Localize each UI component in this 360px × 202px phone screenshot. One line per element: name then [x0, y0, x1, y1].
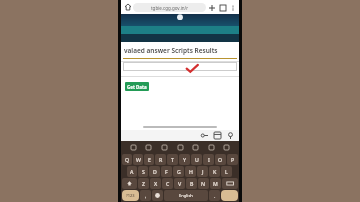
button[interactable]: W: [133, 154, 143, 165]
button[interactable]: N: [198, 178, 209, 189]
staticText: tgbie.cgg.gov.in/r: [151, 5, 189, 11]
button[interactable]: Tabs: [217, 2, 228, 13]
button[interactable]: Q: [122, 154, 132, 165]
button[interactable]: Sticker: [144, 143, 153, 152]
button[interactable]: New tab: [206, 2, 217, 13]
button[interactable]: ?123: [122, 190, 139, 201]
button[interactable]: [123, 62, 237, 71]
button[interactable]: I: [203, 154, 214, 165]
staticText: Y: [183, 156, 187, 163]
staticText: P: [231, 156, 235, 163]
button[interactable]: Addresses: [224, 130, 237, 141]
button[interactable]: Backspace: [222, 178, 238, 189]
button[interactable]: H: [185, 166, 196, 177]
button[interactable]: T: [167, 154, 178, 165]
button[interactable]: A: [127, 166, 137, 177]
button[interactable]: Payment methods: [211, 130, 224, 141]
button[interactable]: L: [221, 166, 232, 177]
staticText: G: [177, 168, 181, 175]
staticText: A: [130, 168, 134, 175]
staticText: F: [165, 168, 168, 175]
button[interactable]: .: [209, 190, 220, 201]
button[interactable]: U: [191, 154, 202, 165]
button[interactable]: Z: [138, 178, 149, 189]
button[interactable]: Y: [179, 154, 190, 165]
button[interactable]: Translate: [176, 143, 185, 152]
button[interactable]: ,: [140, 190, 151, 201]
staticText: Get Data: [127, 84, 147, 90]
staticText: T: [171, 156, 174, 163]
staticText: N: [201, 180, 206, 187]
button[interactable]: C: [162, 178, 173, 189]
button[interactable]: Emoji: [191, 143, 200, 152]
button[interactable]: Voice input: [222, 143, 231, 152]
staticText: C: [166, 180, 170, 187]
staticText: Z: [142, 180, 145, 187]
button[interactable]: tgbie.cgg.gov.in/r: [133, 3, 206, 12]
staticText: D: [153, 168, 157, 175]
button[interactable]: R: [155, 154, 166, 165]
button[interactable]: G: [173, 166, 184, 177]
staticText: L: [225, 168, 228, 175]
staticText: English: [179, 193, 193, 198]
button[interactable]: More options: [228, 3, 237, 12]
staticText: .: [214, 192, 216, 199]
button[interactable]: O: [215, 154, 226, 165]
staticText: V: [178, 180, 182, 187]
button[interactable]: M: [210, 178, 221, 189]
button[interactable]: [221, 190, 238, 201]
staticText: O: [218, 156, 223, 163]
staticText: K: [213, 168, 217, 175]
button[interactable]: S: [138, 166, 148, 177]
button[interactable]: Get Data: [125, 82, 149, 91]
staticText: M: [213, 180, 218, 187]
button[interactable]: D: [149, 166, 160, 177]
button[interactable]: Clipboard: [129, 143, 138, 152]
button[interactable]: Emoji: [152, 190, 163, 201]
button[interactable]: E: [144, 154, 154, 165]
staticText: valaed answer Scripts Results: [124, 46, 218, 55]
button[interactable]: J: [197, 166, 208, 177]
button[interactable]: B: [186, 178, 197, 189]
staticText: W: [136, 156, 141, 163]
button[interactable]: Shift: [122, 178, 137, 189]
staticText: H: [189, 168, 193, 175]
staticText: Q: [125, 156, 130, 163]
button[interactable]: X: [150, 178, 161, 189]
button[interactable]: Theme: [207, 143, 216, 152]
staticText: ?123: [126, 193, 135, 198]
button[interactable]: GIF: [160, 143, 169, 152]
button[interactable]: Home: [123, 2, 133, 12]
button[interactable]: P: [227, 154, 238, 165]
staticText: B: [190, 180, 194, 187]
staticText: U: [195, 156, 199, 163]
staticText: R: [159, 156, 163, 163]
button[interactable]: Passwords: [198, 130, 211, 141]
button[interactable]: F: [161, 166, 172, 177]
staticText: J: [202, 168, 204, 175]
staticText: ,: [145, 192, 147, 199]
staticText: X: [154, 180, 158, 187]
staticText: S: [142, 168, 145, 175]
staticText: E: [148, 156, 151, 163]
staticText: I: [208, 156, 210, 163]
button[interactable]: V: [174, 178, 185, 189]
button[interactable]: K: [209, 166, 220, 177]
button[interactable]: English: [164, 190, 208, 201]
